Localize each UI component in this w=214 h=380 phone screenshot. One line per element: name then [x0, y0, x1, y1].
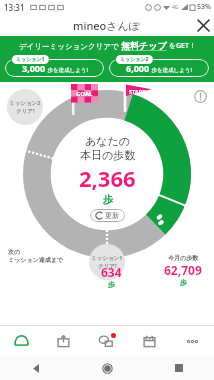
button[interactable]: Calendar	[128, 326, 171, 356]
button[interactable]: Close	[192, 14, 214, 36]
staticText: 今月の歩数	[168, 254, 199, 262]
staticText: 3,000	[22, 62, 46, 74]
staticText: ミッション1	[91, 254, 123, 262]
staticText: 53%	[197, 2, 211, 12]
button[interactable]: 6,000	[109, 55, 209, 77]
staticText: mineoさんぽ	[73, 18, 141, 33]
staticText: 歩	[103, 193, 113, 206]
button[interactable]: 3,000	[5, 55, 104, 77]
staticText: ミッション達成まで	[8, 256, 63, 264]
staticText: 次の	[8, 248, 21, 256]
staticText: 歩を達成しよう!	[150, 66, 192, 74]
staticText: GOAL	[76, 90, 93, 98]
staticText: 本日の歩数	[80, 148, 136, 162]
staticText: 13:31	[4, 2, 25, 13]
button[interactable]: More	[171, 326, 214, 356]
staticText: 4G	[172, 4, 179, 11]
button[interactable]: Home	[0, 326, 42, 356]
staticText: ミッション1	[16, 56, 45, 63]
staticText: クリア!	[98, 262, 117, 270]
staticText: デイリーミッションクリアで	[19, 41, 121, 51]
staticText: ミッション2	[120, 56, 149, 63]
staticText: 2,366	[79, 163, 136, 193]
staticText: 歩	[108, 280, 115, 289]
staticText: 歩	[180, 278, 187, 287]
button[interactable]: Messages	[85, 326, 128, 356]
staticText: あなたの	[85, 134, 131, 148]
staticText: START	[129, 88, 146, 95]
staticText: 歩を達成しよう!	[46, 66, 88, 74]
button[interactable]: 更新	[90, 209, 125, 222]
staticText: 更新	[105, 211, 119, 220]
staticText: 6,000	[126, 62, 150, 74]
staticText: 62,709	[164, 262, 202, 278]
staticText: をGET！	[167, 41, 196, 51]
button[interactable]: Inbox	[42, 326, 85, 356]
button[interactable]: 無料チップ	[121, 40, 167, 51]
staticText: ミッション2	[9, 99, 41, 107]
staticText: クリア!	[16, 107, 35, 115]
staticText: 634	[101, 264, 122, 280]
button[interactable]: Information	[192, 88, 208, 104]
